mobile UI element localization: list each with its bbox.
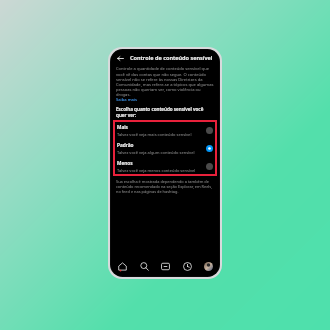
staticText: Escolha quanto conteúdo sensível você qu… [116, 106, 214, 118]
button[interactable]: Profile [200, 258, 216, 274]
staticText: Controle de conteúdo sensível [130, 54, 213, 62]
button[interactable]: Home [114, 258, 130, 274]
button[interactable]: Back [115, 53, 125, 63]
staticText: Mais [117, 124, 128, 131]
button[interactable]: Padrão [114, 139, 216, 157]
button[interactable]: Mais [114, 121, 216, 139]
button[interactable]: Saiba mais [116, 97, 137, 103]
staticText: Sua escolha é mostrada dependendo a tamb… [116, 179, 214, 194]
staticText: Talvez você veja algum conteúdo sensível [117, 150, 195, 155]
staticText: Padrão [117, 142, 134, 149]
button[interactable]: Activity [179, 258, 195, 274]
staticText: Menos [117, 160, 133, 167]
button[interactable]: Search [136, 258, 152, 274]
button[interactable]: Menos [114, 157, 216, 175]
staticText: Controle a quantidade de conteúdo sensív… [116, 66, 214, 97]
staticText: Talvez você veja mais conteúdo sensível [117, 132, 192, 137]
button[interactable]: Reels [157, 258, 173, 274]
staticText: Talvez você veja menos conteúdo sensível [117, 168, 196, 173]
